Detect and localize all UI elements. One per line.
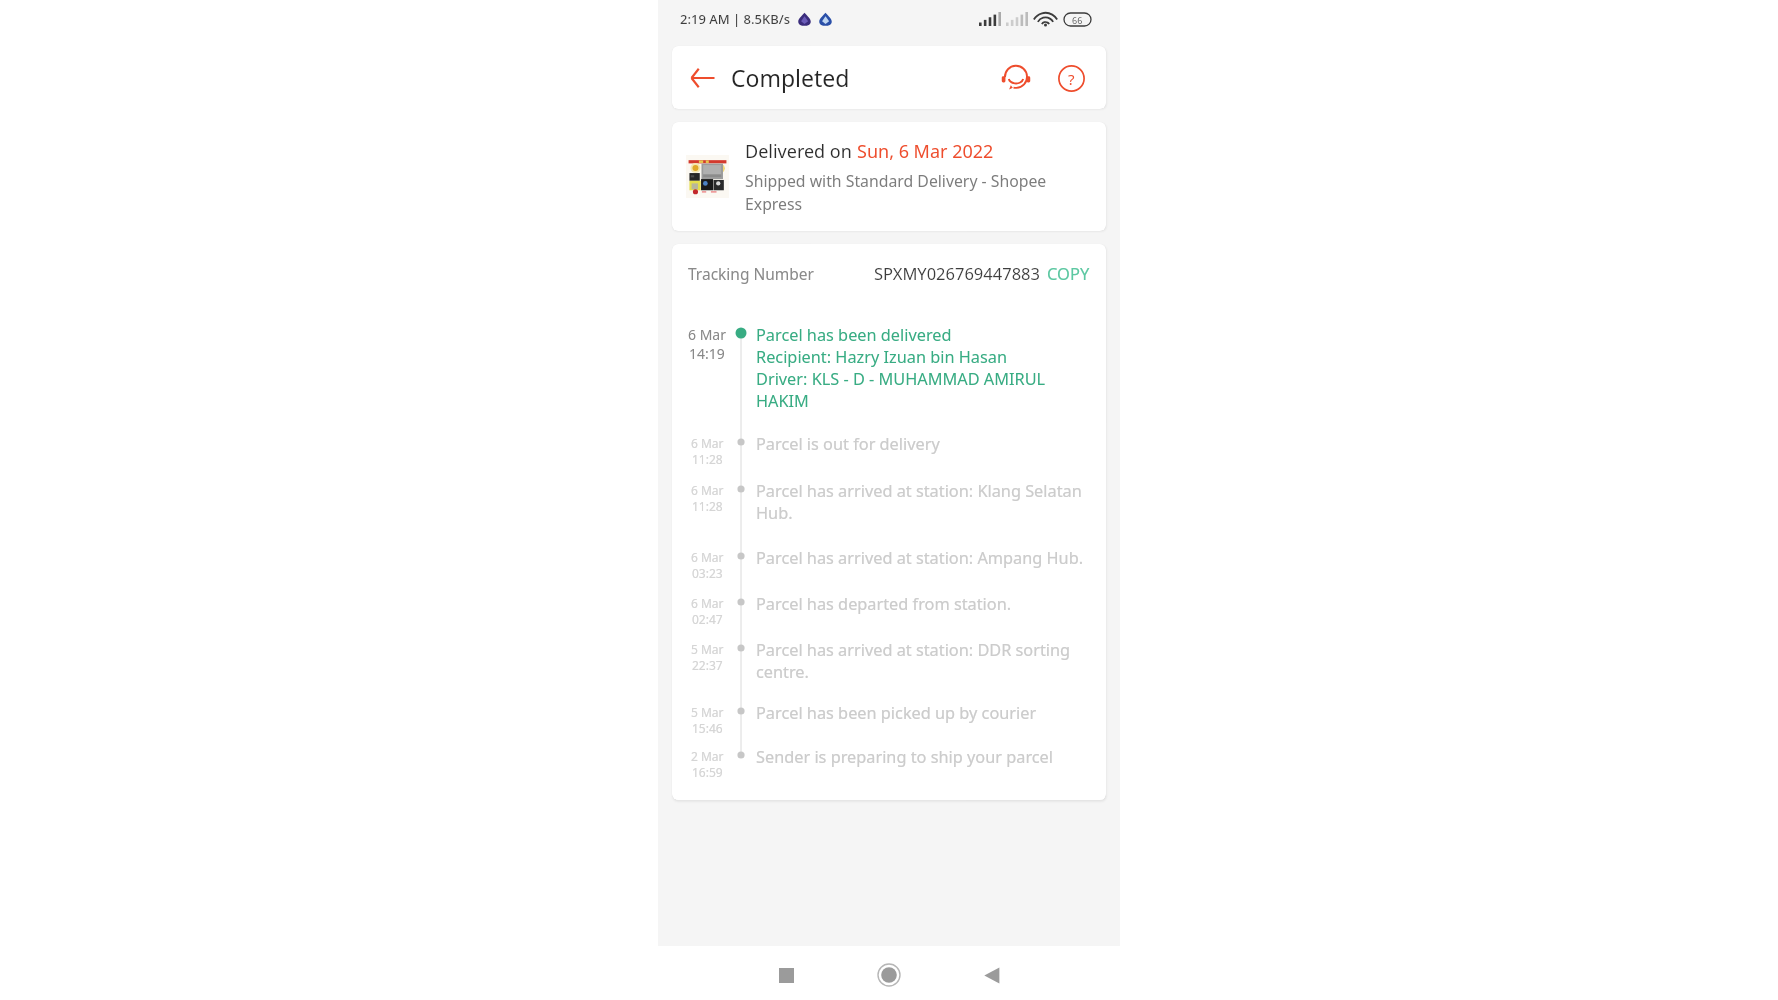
staticText: 6 Mar [691,549,724,565]
staticText: 66 [1072,14,1083,26]
button[interactable]: Back [970,953,1014,997]
staticText: Parcel has arrived at station: Klang Sel… [756,480,1092,524]
button[interactable]: Home [867,953,911,997]
staticText: 6 Mar [691,595,724,611]
staticText: 14:19 [689,344,725,363]
staticText: Driver: KLS - D - MUHAMMAD AMIRUL HAKIM [756,368,1092,412]
staticText: Parcel has arrived at station: Ampang Hu… [756,547,1084,569]
button[interactable]: Recent apps [764,953,808,997]
staticText: Sender is preparing to ship your parcel [756,746,1054,768]
button[interactable]: Delivered on [672,122,1106,231]
staticText: 15:46 [692,720,723,736]
staticText: Recipient: Hazry Izuan bin Hasan [756,346,1007,368]
staticText: Parcel is out for delivery [756,433,940,455]
button[interactable]: Customer support [1000,62,1032,94]
staticText: 5 Mar [691,641,724,657]
staticText: COPY [1047,262,1090,284]
staticText: 11:28 [692,498,723,514]
staticText: 22:37 [692,657,723,673]
staticText: 11:28 [692,451,723,467]
staticText: Sun, 6 Mar 2022 [857,139,994,164]
staticText: 03:23 [692,565,723,581]
staticText: 5 Mar [691,704,724,720]
staticText: 6 Mar [688,325,726,344]
staticText: Completed [731,62,850,93]
staticText: Shipped with Standard Delivery - Shopee … [745,170,1090,215]
button[interactable]: COPY [1045,262,1092,284]
staticText: 16:59 [692,764,723,780]
staticText: Parcel has arrived at station: DDR sorti… [756,639,1092,683]
staticText: Delivered on [745,139,857,164]
staticText: 6 Mar [691,435,724,451]
staticText: 2 Mar [691,748,724,764]
staticText: SPXMY026769447883 [874,262,1040,284]
staticText: Parcel has been picked up by courier [756,702,1037,724]
staticText: ? [1068,69,1075,89]
staticText: 6 Mar [691,482,724,498]
button[interactable]: Back [687,63,717,93]
staticText: 02:47 [692,611,723,627]
staticText: Parcel has been delivered [756,324,952,346]
button[interactable]: Help [1055,62,1087,94]
staticText: Parcel has departed from station. [756,593,1012,615]
staticText: 2:19 AM | 8.5KB/s [680,10,791,28]
staticText: Tracking Number [688,263,815,284]
